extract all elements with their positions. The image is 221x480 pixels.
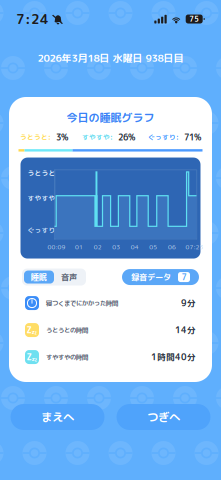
staticText: 1時間40分 [151,351,196,363]
staticText: z [34,357,37,363]
staticText: 04 [131,243,139,251]
staticText: すやすやの時間 [46,353,88,361]
staticText: 今日の睡眠グラフ [66,110,154,125]
staticText: 02 [94,243,102,251]
staticText: 寝つくまでにかかった時間 [46,299,118,307]
staticText: 2026年3月18日 水曜日 938日目 [37,51,183,65]
staticText: 75 [189,14,199,24]
staticText: Z [26,351,31,363]
staticText: z [31,327,34,336]
button[interactable]: Z [9,344,212,371]
button[interactable]: 睡眠 [24,271,54,284]
staticText: うとうとの時間 [46,326,88,334]
staticText: まえへ [41,409,74,425]
staticText: 睡眠 [31,271,47,283]
staticText: すやすや [27,194,55,203]
staticText: うとうと: [20,133,51,142]
staticText: 26% [118,131,135,143]
button[interactable]: 録音データ [122,269,199,285]
button[interactable]: 音声 [54,271,84,284]
staticText: 14分 [175,324,196,336]
staticText: 01 [75,243,83,251]
staticText: 00:09 [47,243,65,251]
staticText: 9分 [181,297,196,309]
staticText: つぎへ [147,409,180,425]
staticText: うとうと [27,169,55,178]
staticText: z [31,354,34,363]
button[interactable]: まえへ [10,404,104,430]
staticText: 06 [168,243,176,251]
button[interactable]: Z [9,317,212,344]
staticText: 05 [149,243,157,251]
staticText: 録音データ [131,271,171,283]
staticText: すやすや: [82,133,113,142]
staticText: Z [26,324,31,336]
button[interactable]: 寝つくまでにかかった時間 [9,290,212,317]
staticText: 音声 [61,271,77,283]
staticText: ぐっすり [27,226,55,235]
staticText: z [34,330,37,336]
staticText: 71% [184,131,201,143]
staticText: 03 [112,243,120,251]
button[interactable]: つぎへ [116,404,210,430]
staticText: 3% [56,131,68,143]
staticText: 7 [181,271,186,283]
staticText: ぐっすり: [148,133,179,142]
staticText: 7:24 [16,10,49,28]
staticText: 07:23 [185,243,203,251]
